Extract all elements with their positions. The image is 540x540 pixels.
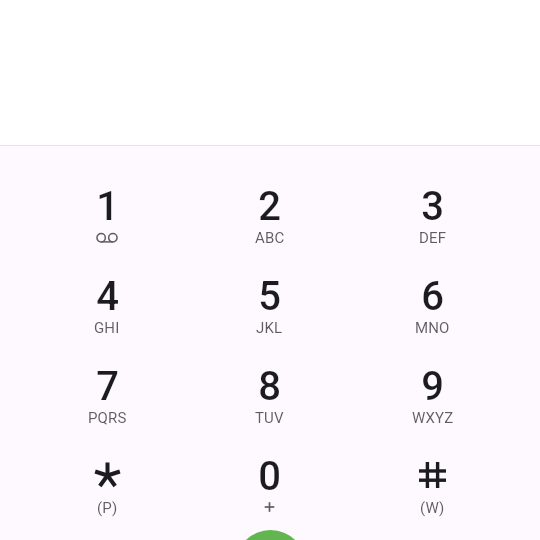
staticText: TUV xyxy=(255,409,284,427)
staticText: ABC xyxy=(255,229,285,247)
button[interactable]: 2 xyxy=(188,192,351,282)
staticText: DEF xyxy=(419,229,447,247)
button[interactable]: 6 xyxy=(351,282,514,372)
button[interactable]: 8 xyxy=(188,372,351,462)
button[interactable]: 3 xyxy=(351,192,514,282)
staticText: 3 xyxy=(421,183,444,230)
staticText: (W) xyxy=(420,499,445,517)
staticText: (P) xyxy=(97,499,118,517)
button[interactable]: Call xyxy=(235,530,306,540)
staticText: 1 xyxy=(96,183,119,230)
button[interactable]: 1 xyxy=(26,192,188,282)
staticText: 4 xyxy=(96,273,119,320)
staticText: 7 xyxy=(96,363,119,410)
staticText: 8 xyxy=(258,363,281,410)
staticText: 5 xyxy=(258,273,281,320)
button[interactable]: 9 xyxy=(351,372,514,462)
staticText: PQRS xyxy=(88,409,127,427)
staticText: MNO xyxy=(415,319,450,337)
button[interactable]: 7 xyxy=(26,372,188,462)
button[interactable]: pound xyxy=(351,462,514,540)
staticText: 2 xyxy=(258,183,281,230)
staticText: 6 xyxy=(421,273,444,320)
staticText: JKL xyxy=(256,319,283,337)
staticText: 9 xyxy=(421,363,444,410)
button[interactable]: 5 xyxy=(188,282,351,372)
button[interactable]: star xyxy=(26,462,188,540)
staticText: 0 xyxy=(258,453,281,500)
button[interactable]: 4 xyxy=(26,282,188,372)
staticText: WXYZ xyxy=(412,409,454,427)
button[interactable]: 0 xyxy=(188,462,351,540)
staticText: GHI xyxy=(94,319,120,337)
